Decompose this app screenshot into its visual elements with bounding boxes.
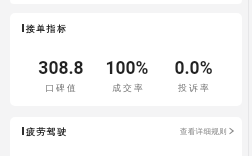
staticText: 308.8 <box>38 58 84 79</box>
other: 查看详细规则 <box>229 128 234 134</box>
staticText: 投诉率 <box>178 83 211 94</box>
staticText: 口碑值 <box>45 83 78 94</box>
staticText: 接单指标 <box>26 23 68 34</box>
button[interactable]: 查看详细规则 <box>180 127 234 136</box>
staticText: 疲劳驾驶 <box>26 126 68 137</box>
staticText: 查看详细规则 <box>180 127 227 136</box>
staticText: 0.0% <box>174 58 213 79</box>
staticText: 成交率 <box>112 83 145 94</box>
staticText: 100% <box>105 58 149 79</box>
